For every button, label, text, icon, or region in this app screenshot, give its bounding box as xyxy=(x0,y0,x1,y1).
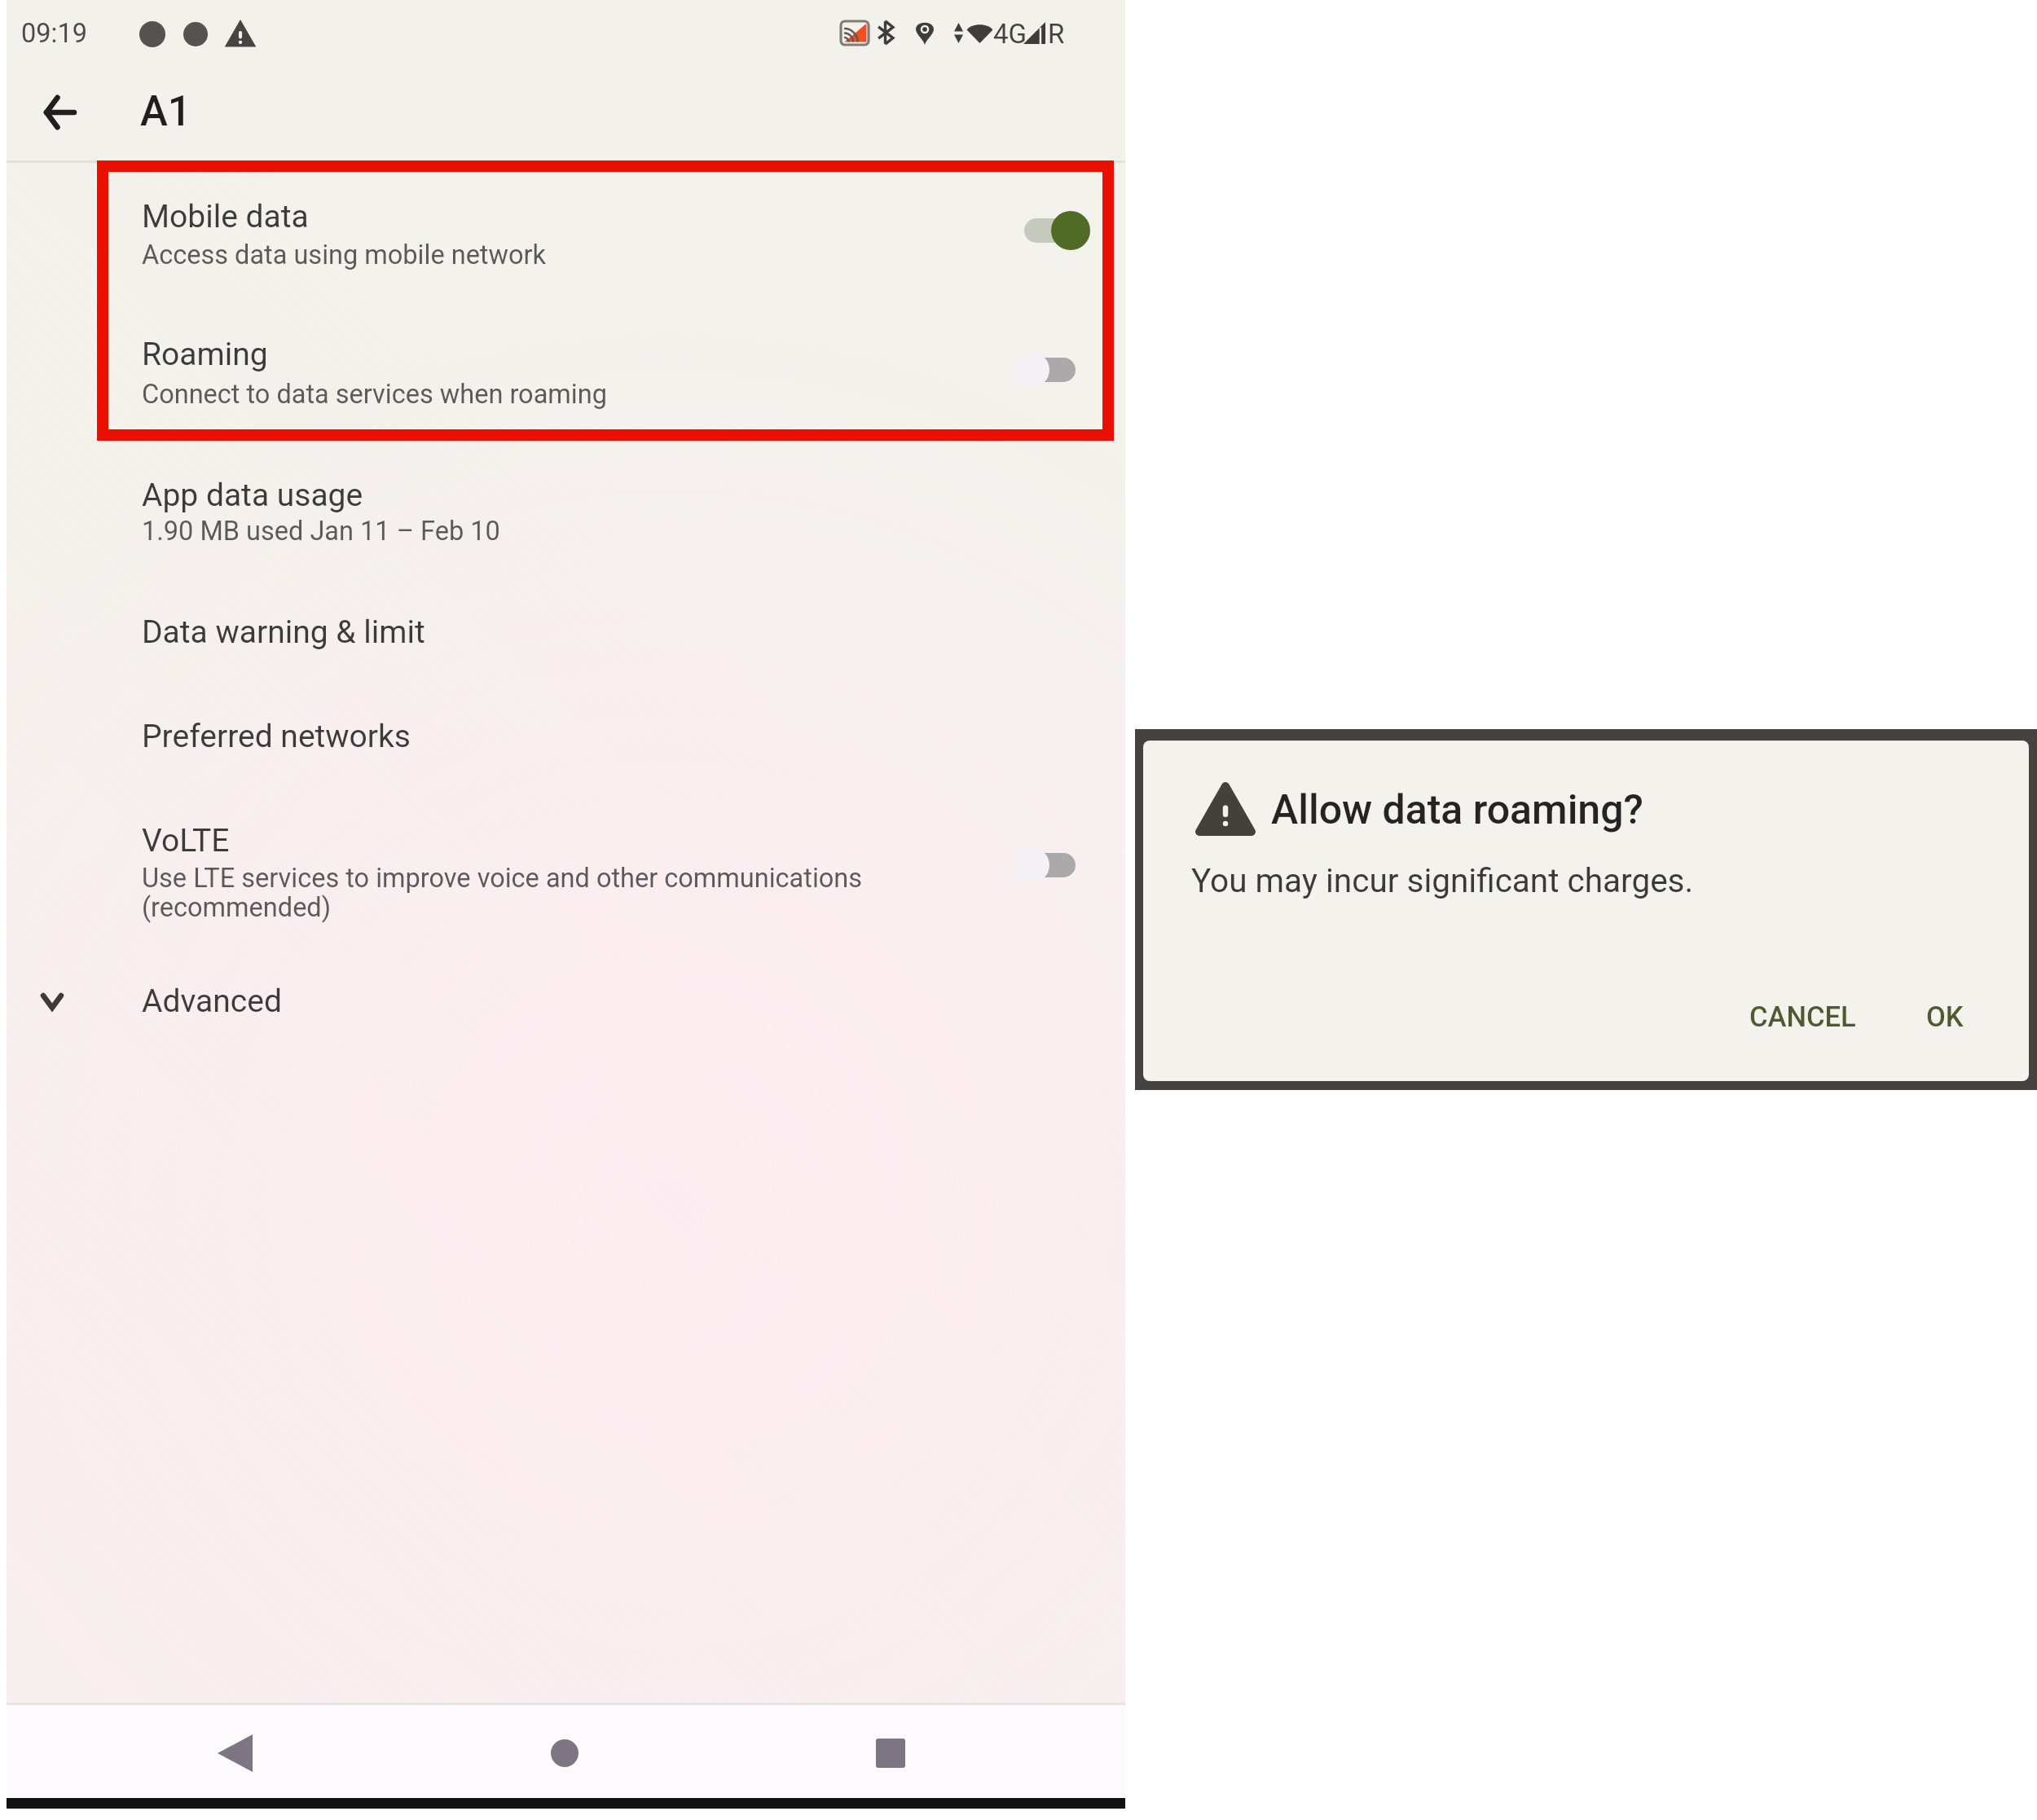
staticText: (recommended) xyxy=(142,892,332,923)
button[interactable]: VoLTE xyxy=(0,787,1125,956)
button[interactable]: Home xyxy=(508,1712,622,1794)
button[interactable]: Advanced xyxy=(0,956,1125,1061)
staticText: Preferred networks xyxy=(142,718,411,755)
button[interactable]: Back xyxy=(178,1712,292,1794)
staticText: A1 xyxy=(140,87,191,136)
staticText: Access data using mobile network xyxy=(142,240,546,270)
button[interactable]: Preferred networks xyxy=(0,683,1125,787)
staticText: Advanced xyxy=(142,983,282,1020)
button[interactable]: Switch off xyxy=(1018,345,1108,394)
button[interactable]: Switch on xyxy=(1018,206,1108,255)
staticText: 09:19 xyxy=(21,18,87,49)
button[interactable]: Back xyxy=(24,77,95,148)
staticText: VoLTE xyxy=(142,822,230,859)
button[interactable]: Recents xyxy=(834,1712,948,1794)
staticText: Use LTE services to improve voice and ot… xyxy=(142,863,863,894)
button[interactable]: App data usage xyxy=(0,440,1125,578)
staticText: You may incur significant charges. xyxy=(1191,861,1694,899)
staticText: App data usage xyxy=(142,477,363,514)
staticText: Data warning & limit xyxy=(142,613,425,651)
staticText: Allow data roaming? xyxy=(1271,786,1643,834)
staticText: 4G xyxy=(993,18,1027,50)
staticText: Mobile data xyxy=(142,198,309,235)
button[interactable]: OK xyxy=(1907,987,1983,1046)
staticText: OK xyxy=(1926,1000,1964,1033)
staticText: CANCEL xyxy=(1749,1000,1856,1033)
staticText: R xyxy=(1048,18,1065,50)
button[interactable]: Switch off xyxy=(1018,841,1108,890)
staticText: Connect to data services when roaming xyxy=(142,379,607,410)
button[interactable]: Data warning & limit xyxy=(0,578,1125,683)
button[interactable]: CANCEL xyxy=(1730,987,1876,1046)
staticText: Roaming xyxy=(142,336,268,373)
button[interactable]: Roaming xyxy=(0,300,1125,440)
button[interactable]: Mobile data xyxy=(0,160,1125,300)
staticText: 1.90 MB used Jan 11 – Feb 10 xyxy=(142,516,500,547)
